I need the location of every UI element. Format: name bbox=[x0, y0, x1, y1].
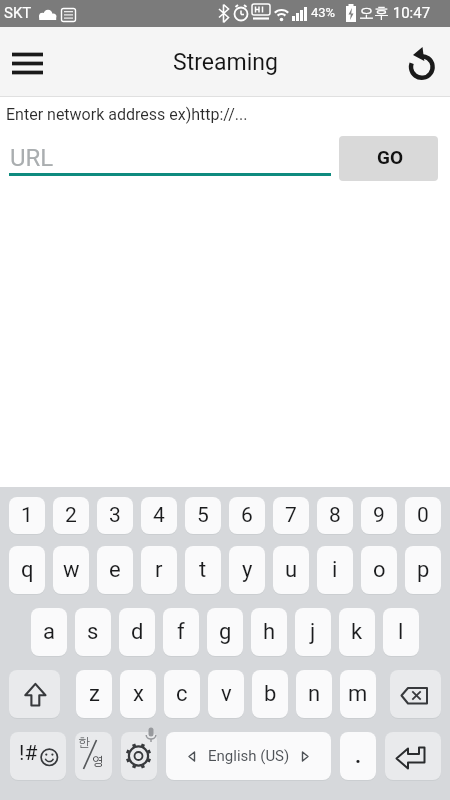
staticText: URL bbox=[10, 144, 54, 172]
button[interactable]: u bbox=[273, 546, 309, 594]
staticText: 1 bbox=[21, 503, 33, 528]
button[interactable]: h bbox=[251, 608, 287, 656]
button[interactable]: 8 bbox=[317, 497, 353, 534]
staticText: s bbox=[87, 619, 99, 645]
staticText: u bbox=[285, 557, 298, 583]
button[interactable]: v bbox=[208, 670, 244, 718]
staticText: 8 bbox=[329, 503, 341, 528]
staticText: e bbox=[109, 557, 121, 583]
button[interactable]: m bbox=[340, 670, 376, 718]
button[interactable]: e bbox=[97, 546, 133, 594]
button[interactable]: q bbox=[9, 546, 45, 594]
staticText: !# bbox=[19, 741, 38, 766]
staticText: r bbox=[155, 557, 163, 583]
button[interactable]: g bbox=[207, 608, 243, 656]
staticText: English (US) bbox=[208, 747, 290, 765]
button[interactable]: URL bbox=[9, 132, 331, 177]
staticText: Streaming bbox=[173, 49, 278, 76]
staticText: w bbox=[63, 557, 80, 583]
button[interactable]: s bbox=[75, 608, 111, 656]
staticText: 9 bbox=[373, 503, 385, 528]
button[interactable] bbox=[75, 732, 112, 780]
button[interactable]: o bbox=[361, 546, 397, 594]
staticText: a bbox=[43, 619, 55, 645]
button[interactable]: n bbox=[296, 670, 332, 718]
button[interactable]: 1 bbox=[9, 497, 45, 534]
button[interactable]: 5 bbox=[185, 497, 221, 534]
staticText: k bbox=[351, 619, 363, 645]
button[interactable]: 3 bbox=[97, 497, 133, 534]
button[interactable]: k bbox=[339, 608, 375, 656]
button[interactable] bbox=[4, 40, 52, 88]
button[interactable]: y bbox=[229, 546, 265, 594]
button[interactable]: b bbox=[252, 670, 288, 718]
staticText: g bbox=[219, 619, 232, 645]
button[interactable]: p bbox=[405, 546, 441, 594]
button[interactable] bbox=[385, 732, 441, 780]
staticText: 6 bbox=[241, 503, 253, 528]
button[interactable]: d bbox=[119, 608, 155, 656]
staticText: Enter network address ex)http://... bbox=[6, 105, 248, 124]
button[interactable]: 4 bbox=[141, 497, 177, 534]
staticText: 영 bbox=[92, 753, 104, 768]
staticText: p bbox=[417, 557, 430, 583]
button[interactable]: 2 bbox=[53, 497, 89, 534]
button[interactable]: r bbox=[141, 546, 177, 594]
button[interactable]: 0 bbox=[405, 497, 441, 534]
button[interactable]: f bbox=[163, 608, 199, 656]
button[interactable]: w bbox=[53, 546, 89, 594]
button[interactable]: . bbox=[340, 732, 376, 780]
button[interactable] bbox=[398, 40, 446, 88]
staticText: 3 bbox=[109, 503, 121, 528]
button[interactable]: a bbox=[31, 608, 67, 656]
button[interactable] bbox=[121, 732, 157, 780]
staticText: 2 bbox=[65, 503, 77, 528]
staticText: n bbox=[308, 681, 321, 707]
staticText: l bbox=[398, 619, 404, 645]
button[interactable]: j bbox=[295, 608, 331, 656]
staticText: SKT bbox=[4, 4, 32, 22]
staticText: 오후 10:47 bbox=[359, 4, 431, 23]
staticText: z bbox=[89, 681, 100, 707]
button[interactable] bbox=[9, 670, 60, 718]
button[interactable]: 9 bbox=[361, 497, 397, 534]
staticText: 7 bbox=[285, 503, 297, 528]
staticText: x bbox=[133, 681, 144, 707]
staticText: f bbox=[177, 619, 185, 645]
button[interactable]: l bbox=[383, 608, 419, 656]
staticText: 0 bbox=[417, 503, 429, 528]
button[interactable] bbox=[390, 670, 441, 718]
staticText: i bbox=[332, 557, 338, 583]
button[interactable]: 6 bbox=[229, 497, 265, 534]
staticText: q bbox=[21, 557, 34, 583]
button[interactable]: t bbox=[185, 546, 221, 594]
button[interactable] bbox=[10, 732, 66, 780]
staticText: 5 bbox=[197, 503, 209, 528]
staticText: 한 bbox=[78, 734, 90, 749]
staticText: b bbox=[264, 681, 277, 707]
staticText: c bbox=[176, 681, 188, 707]
button[interactable]: x bbox=[120, 670, 156, 718]
button[interactable]: 7 bbox=[273, 497, 309, 534]
button[interactable] bbox=[166, 732, 331, 780]
staticText: GO bbox=[377, 146, 404, 168]
staticText: v bbox=[221, 681, 232, 707]
staticText: 4 bbox=[153, 503, 165, 528]
button[interactable]: i bbox=[317, 546, 353, 594]
staticText: h bbox=[263, 619, 276, 645]
staticText: 43% bbox=[311, 5, 336, 20]
staticText: m bbox=[348, 681, 368, 707]
staticText: y bbox=[242, 557, 253, 583]
staticText: . bbox=[355, 744, 362, 769]
staticText: o bbox=[373, 557, 386, 583]
button[interactable]: z bbox=[76, 670, 112, 718]
staticText: d bbox=[131, 619, 144, 645]
button[interactable]: GO bbox=[339, 136, 438, 181]
staticText: j bbox=[310, 619, 316, 645]
staticText: t bbox=[199, 557, 207, 583]
button[interactable]: c bbox=[164, 670, 200, 718]
